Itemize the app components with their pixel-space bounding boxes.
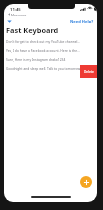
staticText: Sure, Here is my Instagram drako1234 <box>6 57 66 61</box>
button[interactable]: Add <box>80 176 92 188</box>
staticText: Delete <box>84 70 94 74</box>
staticText: 11:45 <box>10 7 21 11</box>
staticText: Don't forget to check out my YouTube cha… <box>6 39 81 43</box>
button[interactable]: Goodnight and sleep well. Talk to you to… <box>6 63 97 72</box>
staticText: Need Help? <box>70 19 94 23</box>
button[interactable]: Need Help? <box>70 19 94 23</box>
staticText: Messages <box>11 13 27 16</box>
staticText: Yes, I do have a Facebook account. Here … <box>6 48 80 52</box>
button[interactable]: Back <box>7 19 14 23</box>
staticText: Goodnight and sleep well. Talk to you to… <box>6 66 81 70</box>
button[interactable]: Sure, Here is my Instagram drako1234 <box>6 54 97 63</box>
staticText: Fast Keyboard <box>6 25 59 35</box>
button[interactable]: Messages <box>8 13 97 16</box>
button[interactable]: Delete <box>80 65 97 78</box>
button[interactable]: Yes, I do have a Facebook account. Here … <box>6 45 97 54</box>
button[interactable]: Don't forget to check out my YouTube cha… <box>6 36 97 45</box>
